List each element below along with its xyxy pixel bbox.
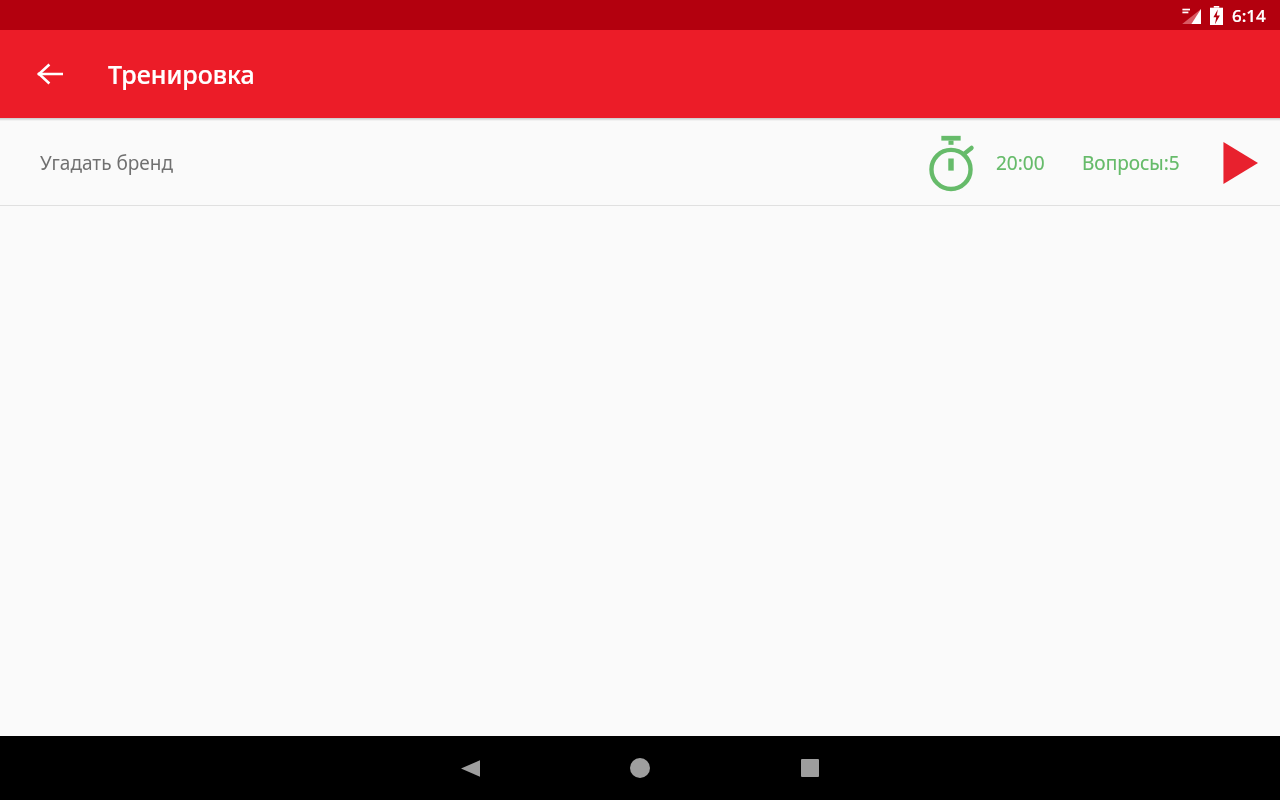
- staticText: 6:14: [1232, 4, 1266, 27]
- button[interactable]: Back: [446, 744, 494, 792]
- staticText: 20:00: [996, 150, 1052, 176]
- button[interactable]: Back: [26, 50, 74, 98]
- button[interactable]: Угадать бренд: [0, 121, 1280, 205]
- staticText: Вопросы:5: [1082, 150, 1180, 176]
- staticText: Угадать бренд: [40, 150, 928, 176]
- staticText: Тренировка: [108, 57, 255, 91]
- button[interactable]: Start: [1214, 137, 1266, 189]
- button[interactable]: Recent apps: [786, 744, 834, 792]
- button[interactable]: Home: [616, 744, 664, 792]
